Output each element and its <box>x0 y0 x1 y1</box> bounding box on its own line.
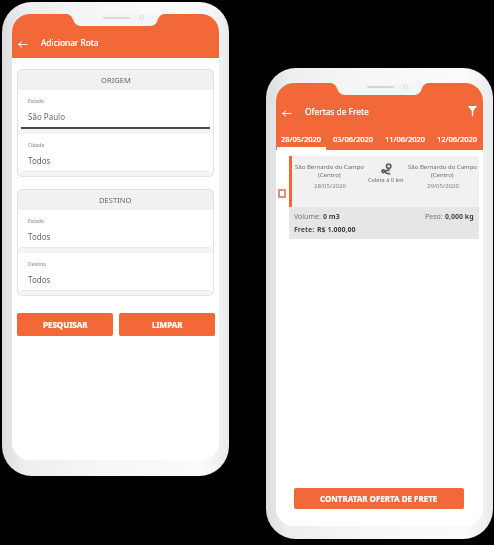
staticText: Peso: <box>425 212 445 222</box>
staticText: (Centro) <box>431 171 454 179</box>
staticText: São Bernardo do Campo <box>408 163 477 171</box>
button[interactable]: 12/06/2020 <box>431 127 483 150</box>
staticText: LIMPAR <box>152 319 183 330</box>
staticText: 11/06/2020 <box>385 134 426 144</box>
button[interactable]: PESQUISAR <box>17 313 113 336</box>
button[interactable]: São Bernardo do Campo <box>289 156 479 239</box>
staticText: Adicionar Rota <box>41 37 99 48</box>
button[interactable]: Estado <box>17 90 214 134</box>
staticText: Todos <box>28 231 51 242</box>
staticText: DESTINO <box>99 195 132 205</box>
staticText: 03/06/2020 <box>333 134 374 144</box>
button[interactable]: 03/06/2020 <box>327 127 379 150</box>
button[interactable]: Destino <box>17 253 214 296</box>
staticText: 29/05/2020 <box>427 182 459 190</box>
staticText: CONTRATAR OFERTA DE FRETE <box>320 493 438 504</box>
staticText: Ofertas de Frete <box>305 106 369 117</box>
staticText: Frete: <box>294 225 317 235</box>
button[interactable]: 28/05/2020 <box>276 127 327 150</box>
staticText: Coleta à 0 km <box>368 176 404 184</box>
button[interactable]: Back <box>276 101 296 125</box>
staticText: 0 m3 <box>323 212 340 222</box>
staticText: 28/05/2020 <box>314 182 346 190</box>
staticText: R$ 1.000,00 <box>317 225 356 235</box>
button[interactable]: 11/06/2020 <box>379 127 431 150</box>
staticText: ORIGEM <box>101 75 131 85</box>
staticText: Estado <box>28 218 44 225</box>
staticText: Cidade <box>28 142 45 149</box>
staticText: Destino <box>28 261 47 268</box>
button[interactable]: CONTRATAR OFERTA DE FRETE <box>294 488 464 509</box>
button[interactable]: Select offer <box>278 189 286 198</box>
staticText: Todos <box>28 155 51 166</box>
button[interactable]: Back <box>12 32 32 56</box>
button[interactable]: Filter <box>461 100 483 122</box>
staticText: 12/06/2020 <box>437 134 478 144</box>
staticText: São Paulo <box>28 111 65 122</box>
button[interactable]: Estado <box>17 210 214 253</box>
staticText: Volume: <box>294 212 323 222</box>
staticText: São Bernardo do Campo <box>295 163 364 171</box>
staticText: 28/05/2020 <box>281 134 322 144</box>
staticText: 0,000 kg <box>445 212 474 222</box>
button[interactable]: LIMPAR <box>119 313 215 336</box>
staticText: Estado <box>28 98 44 105</box>
button[interactable]: Cidade <box>17 134 214 177</box>
staticText: Todos <box>28 274 51 285</box>
staticText: PESQUISAR <box>43 319 88 330</box>
staticText: (Centro) <box>318 171 341 179</box>
